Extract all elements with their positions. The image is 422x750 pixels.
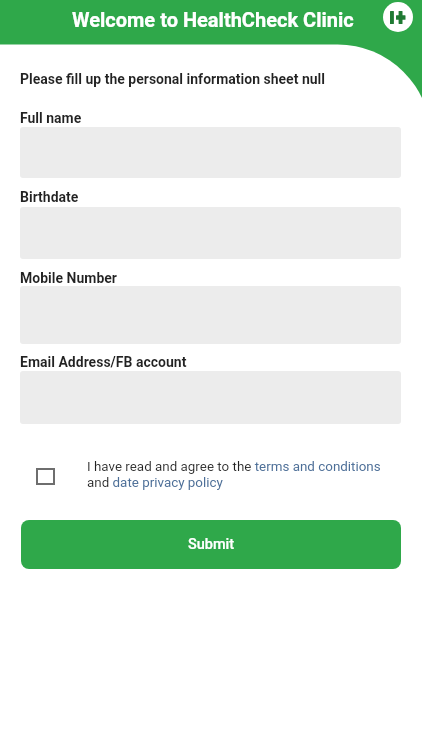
staticText: Email Address/FB account xyxy=(20,354,187,370)
staticText: Mobile Number xyxy=(20,270,117,286)
button[interactable]: Submit xyxy=(21,520,401,569)
staticText: Submit xyxy=(188,536,235,553)
button[interactable]: Clinic logo xyxy=(383,2,413,32)
staticText: Full name xyxy=(20,110,82,126)
staticText: Please fill up the personal information … xyxy=(20,71,325,87)
staticText: Welcome to HealthCheck Clinic xyxy=(72,8,354,31)
staticText: Birthdate xyxy=(20,189,79,205)
button[interactable]: Agree to terms and conditions checkbox xyxy=(36,468,55,485)
button[interactable]: I have read and agree to the terms and c… xyxy=(87,459,381,490)
